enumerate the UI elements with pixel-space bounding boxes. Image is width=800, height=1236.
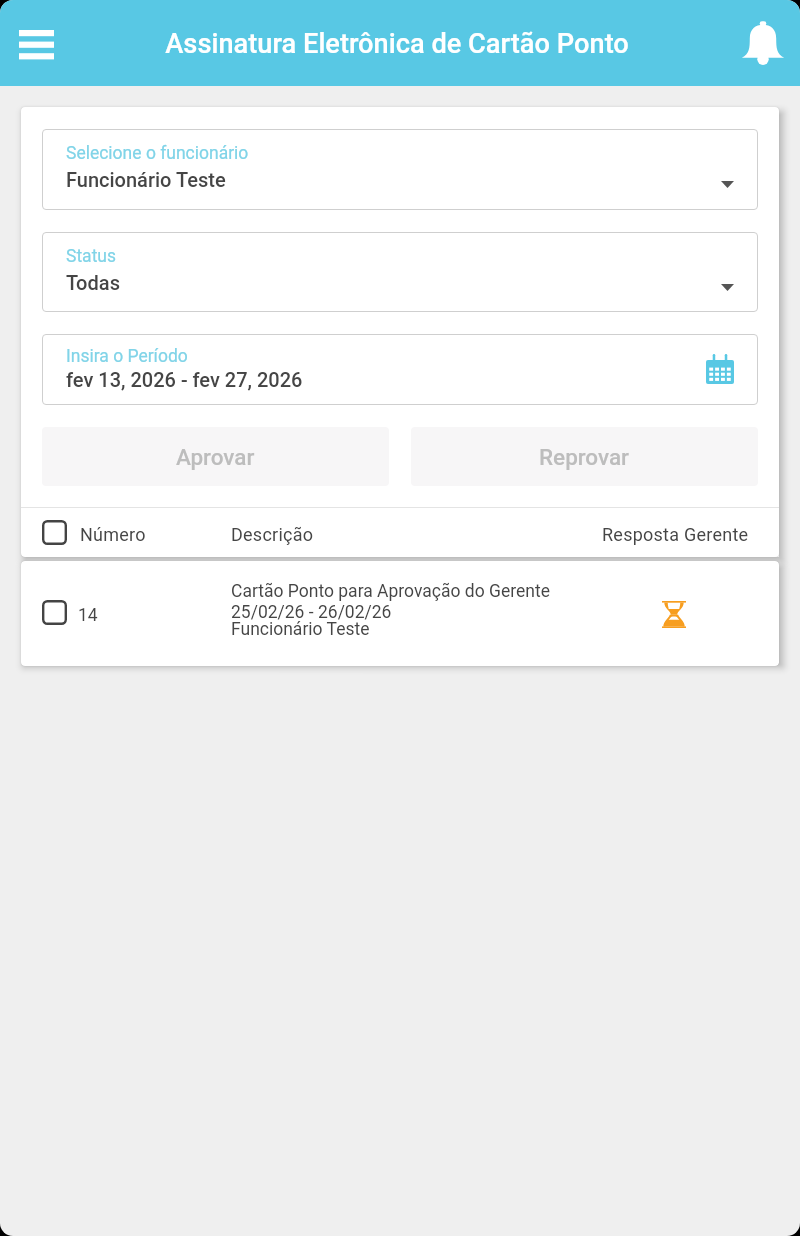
staticText: Funcionário Teste (66, 168, 226, 191)
staticText: Cartão Ponto para Aprovação do Gerente (231, 581, 550, 602)
staticText: 14 (78, 605, 98, 626)
staticText: Aprovar (176, 444, 255, 470)
staticText: Resposta Gerente (602, 524, 749, 545)
button[interactable]: Choose date (703, 352, 737, 386)
button[interactable]: Select (21, 561, 779, 666)
staticText: Reprovar (539, 444, 630, 470)
button[interactable]: Menu (10, 17, 62, 69)
staticText: 25/02/26 - 26/02/26 (231, 602, 392, 623)
button[interactable]: Insira o Período (42, 334, 758, 405)
button[interactable]: Selecione o funcionário (42, 129, 758, 210)
staticText: Status (66, 246, 117, 267)
button[interactable]: Status (42, 232, 758, 312)
staticText: Funcionário Teste (231, 619, 370, 640)
staticText: Número (80, 524, 146, 545)
button[interactable]: Notifications (736, 16, 790, 70)
staticText: fev 13, 2026 - fev 27, 2026 (66, 368, 303, 391)
staticText: Todas (66, 271, 120, 294)
staticText: Selecione o funcionário (66, 143, 249, 164)
button[interactable]: Reprovar (411, 427, 758, 486)
button[interactable]: Select (42, 520, 67, 545)
button[interactable]: Aprovar (42, 427, 389, 486)
button[interactable]: Select (42, 600, 67, 625)
staticText: Assinatura Eletrônica de Cartão Ponto (165, 28, 629, 60)
staticText: Descrição (231, 524, 314, 545)
staticText: Insira o Período (66, 346, 188, 367)
